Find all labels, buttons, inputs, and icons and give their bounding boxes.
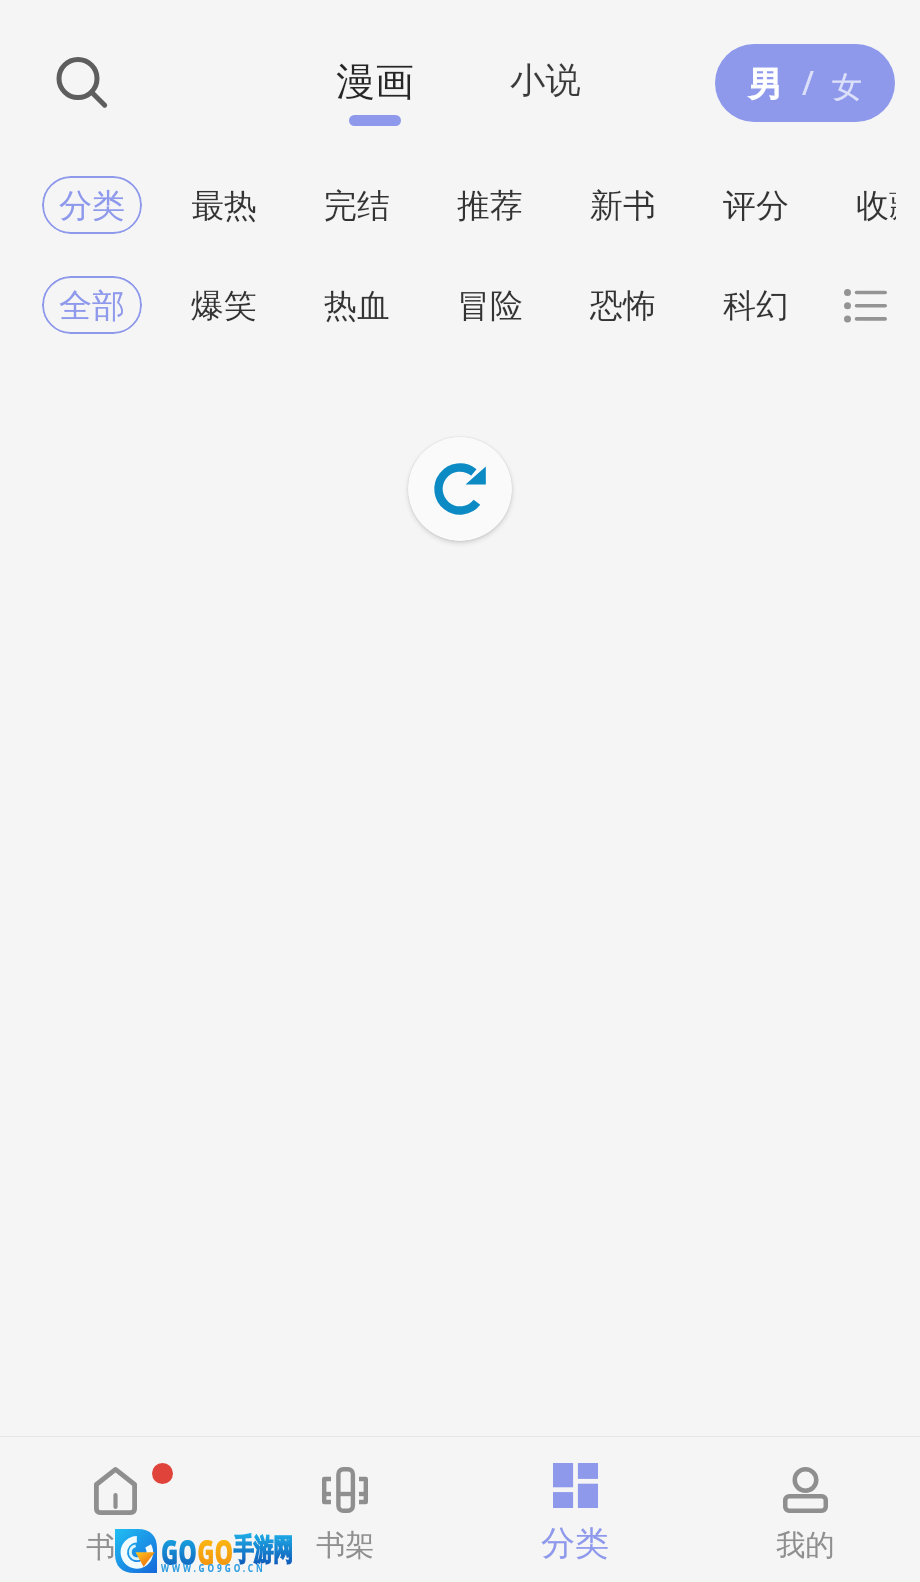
button[interactable]: 最热 [176,166,272,246]
staticText: 完结 [324,185,390,227]
staticText: 新书 [590,185,656,227]
staticText: 分类 [59,185,125,227]
staticText: 男 [748,63,782,106]
staticText: GO [197,1527,234,1568]
staticText: GO [161,1527,197,1568]
button[interactable]: 分类 [42,176,142,234]
staticText: WWW.GO9GO.CN [161,1561,266,1575]
staticText: 冒险 [457,285,523,327]
staticText: 爆笑 [191,285,257,327]
staticText: 科幻 [723,285,789,327]
button[interactable]: 全部 [42,276,142,334]
staticText: 收藏 [856,185,896,227]
staticText: 分类 [541,1522,609,1565]
button[interactable]: 评分 [708,166,804,246]
staticText: 我的 [776,1527,835,1564]
button[interactable]: 完结 [309,166,405,246]
button[interactable]: 热血 [309,266,405,346]
button[interactable]: Refresh [408,437,512,541]
button[interactable]: 男 [715,44,895,122]
staticText: / [802,61,814,105]
button[interactable]: 我的 [690,1437,920,1582]
staticText: 热血 [324,285,390,327]
button[interactable]: 漫画 [336,57,414,126]
staticText: 书架 [316,1527,375,1564]
button[interactable]: 推荐 [442,166,538,246]
staticText: 书城 [86,1529,145,1566]
staticText: 恐怖 [590,285,656,327]
staticText: 最热 [191,185,257,227]
button[interactable]: 收藏 [841,166,896,246]
staticText: 手游网 [234,1531,293,1568]
button[interactable]: 书城 [0,1437,230,1582]
staticText: 小说 [510,58,581,103]
button[interactable]: 冒险 [442,266,538,346]
button[interactable]: 分类 [460,1437,690,1582]
staticText: 全部 [59,285,125,327]
staticText: 推荐 [457,185,523,227]
button[interactable]: 书架 [230,1437,460,1582]
staticText: 女 [832,68,862,106]
button[interactable]: 恐怖 [575,266,671,346]
staticText: 评分 [723,185,789,227]
button[interactable]: 爆笑 [176,266,272,346]
button[interactable]: Search [38,37,130,129]
button[interactable]: 新书 [575,166,671,246]
button[interactable]: 小说 [510,57,581,127]
staticText: 漫画 [336,57,414,106]
button[interactable]: List view [839,279,891,331]
button[interactable]: 科幻 [708,266,804,346]
